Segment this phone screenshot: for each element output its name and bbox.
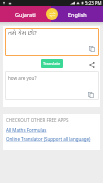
staticText: CHECKOUT OTHER FREE APPS: [6, 117, 69, 123]
staticText: 5:23 PM: [85, 0, 102, 6]
staticText: Gujarati: [15, 11, 36, 18]
button[interactable]: Translate: [41, 59, 63, 68]
staticText: તમે કેમ છો?: [8, 29, 37, 37]
button[interactable]: English: [51, 6, 103, 22]
button[interactable]: Copy translation: [88, 92, 94, 98]
button[interactable]: Share: [89, 62, 95, 68]
button[interactable]: how are you?: [5, 71, 99, 100]
button[interactable]: All Maths Formulas: [6, 127, 47, 133]
button[interactable]: તમે કેમ છો?: [5, 28, 99, 56]
button[interactable]: Copy source text: [89, 46, 95, 52]
staticText: English: [68, 11, 87, 18]
button[interactable]: Online Translator (Support all language): [6, 136, 91, 142]
button[interactable]: Gujarati: [0, 6, 51, 22]
button[interactable]: Swap languages: [46, 8, 58, 20]
staticText: how are you?: [8, 75, 37, 81]
staticText: Translate: [43, 61, 61, 66]
